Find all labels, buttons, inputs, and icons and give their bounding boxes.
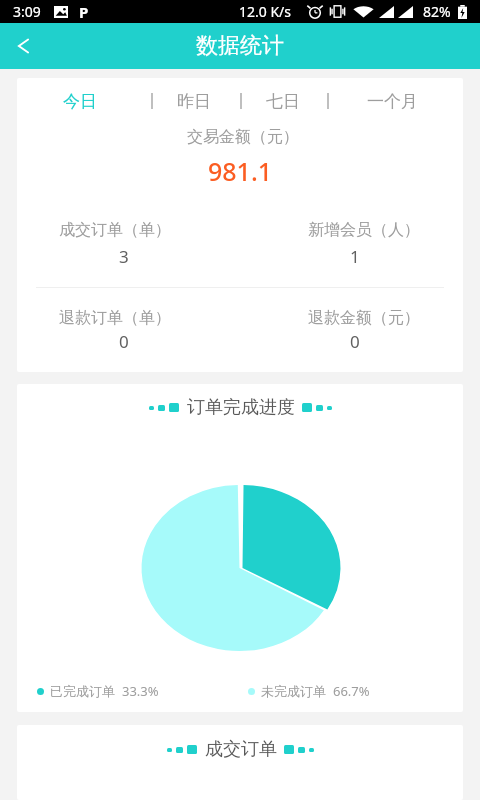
staticText: 成交订单	[205, 738, 277, 761]
button[interactable]: Back	[0, 23, 46, 69]
staticText: 成交订单（单）	[59, 220, 171, 240]
staticText: 1	[350, 245, 360, 268]
staticText: 82%	[423, 2, 451, 21]
staticText: P	[79, 2, 89, 22]
button[interactable]: 成交订单（单）	[17, 210, 463, 277]
staticText: 0	[350, 330, 360, 353]
button[interactable]: 已完成订单	[37, 682, 159, 700]
button[interactable]: 一个月	[366, 86, 418, 116]
staticText: 66.7%	[333, 682, 370, 700]
staticText: 3	[119, 245, 129, 268]
staticText: 七日	[266, 91, 300, 112]
staticText: 3:09	[13, 2, 41, 21]
staticText: 退款订单（单）	[59, 308, 171, 328]
staticText: 已完成订单	[50, 683, 115, 699]
staticText: 未完成订单	[261, 683, 326, 699]
button[interactable]: 今日	[63, 86, 97, 116]
button[interactable]: 七日	[266, 86, 300, 116]
staticText: 交易金额（元）	[187, 127, 299, 147]
staticText: 一个月	[367, 91, 418, 112]
staticText: 0	[119, 330, 129, 353]
button[interactable]: 退款订单（单）	[17, 298, 463, 362]
staticText: 新增会员（人）	[308, 220, 420, 240]
staticText: 退款金额（元）	[308, 308, 420, 328]
button[interactable]: 退款金额（元）	[17, 298, 463, 362]
button[interactable]: 昨日	[177, 86, 211, 116]
button[interactable]: 未完成订单	[248, 682, 370, 700]
button[interactable]: 新增会员（人）	[17, 210, 463, 277]
staticText: 今日	[63, 91, 97, 112]
staticText: 12.0 K/s	[239, 2, 291, 21]
staticText: 昨日	[177, 91, 211, 112]
staticText: 数据统计	[196, 32, 284, 60]
staticText: 订单完成进度	[187, 396, 295, 419]
staticText: 981.1	[208, 154, 273, 182]
staticText: 33.3%	[122, 682, 159, 700]
